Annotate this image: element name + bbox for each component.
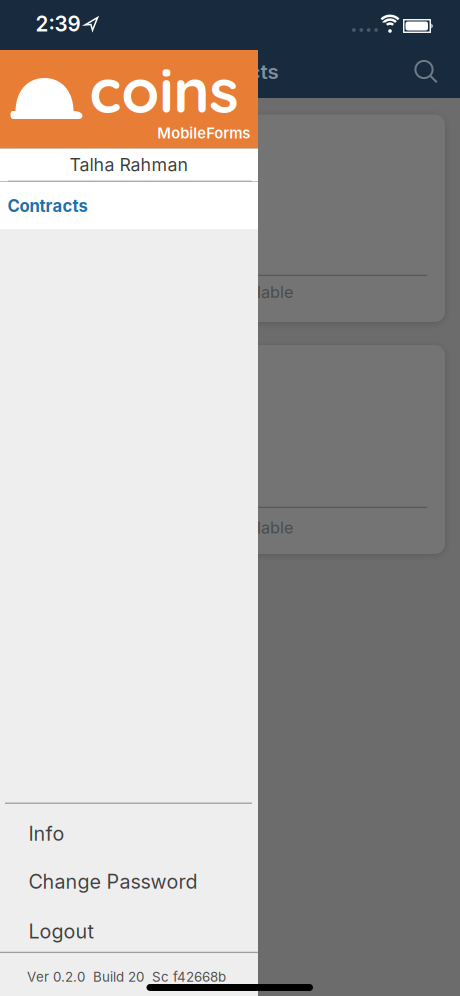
staticText: Contracts [181, 59, 278, 84]
button[interactable]: Info [0, 809, 258, 857]
staticText: Logout [28, 919, 93, 943]
button[interactable]: Search [414, 60, 437, 83]
staticText: Talha Rahman [69, 154, 188, 175]
button[interactable]: Signature Not Available [15, 345, 445, 554]
button[interactable]: Signature Not Available [15, 114, 445, 322]
button[interactable]: Change Password [0, 857, 258, 905]
button[interactable]: Contracts [0, 182, 258, 230]
staticText: Ver 0.2.0 Build 20 Sc f42668b [27, 969, 226, 985]
staticText: Signature Not Available [115, 282, 293, 302]
staticText: Info [28, 822, 64, 845]
staticText: MobileForms [157, 124, 250, 142]
staticText: Contracts [7, 196, 87, 216]
staticText: 2:39 [35, 11, 80, 36]
staticText: coins [89, 51, 238, 128]
staticText: Signature Not Available [115, 518, 293, 537]
button[interactable]: Logout [0, 907, 258, 955]
staticText: Change Password [28, 870, 197, 893]
